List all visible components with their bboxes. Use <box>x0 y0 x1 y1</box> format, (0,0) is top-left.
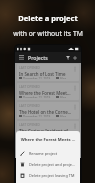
staticText: LAST OPENED <box>19 104 40 108</box>
staticText: In Search of Lost Time <box>19 71 66 77</box>
button[interactable]: Delete project and project TM <box>16 159 80 170</box>
staticText: LAST OPENED <box>19 66 40 70</box>
button[interactable]: Filter <box>64 54 71 61</box>
staticText: The Curious Incident of the Dog in the N… <box>19 128 72 134</box>
button[interactable]: LAST OPENED <box>17 121 79 138</box>
button[interactable]: Add project <box>71 54 78 61</box>
button[interactable]: More options <box>72 66 77 79</box>
button[interactable]: More options <box>72 104 77 117</box>
staticText: Projects <box>28 54 48 61</box>
staticText: Delete project leaving TM <box>29 173 75 178</box>
staticText: Where the Forest Meets the Stars <box>19 90 72 96</box>
staticText: LAST OPENED <box>19 85 40 89</box>
button[interactable]: More options <box>72 123 77 136</box>
staticText: Delete a project <box>18 13 78 23</box>
staticText: Delete project and project TM <box>29 162 76 167</box>
staticText: LAST OPENED <box>19 123 40 127</box>
staticText: December 12, 2019 <box>23 115 51 117</box>
staticText: December 12, 2019 <box>23 153 51 155</box>
staticText: Rename project <box>29 151 58 156</box>
button[interactable]: Delete project leaving TM <box>16 170 80 181</box>
button[interactable]: LAST OPENED <box>17 83 79 100</box>
staticText: December 12, 2019 <box>23 96 51 98</box>
button[interactable]: LAST OPENED <box>17 102 79 119</box>
staticText: A Gentleman in Moscow <box>19 147 70 153</box>
staticText: Files <box>60 77 67 79</box>
button[interactable]: LAST OPENED <box>17 64 79 81</box>
staticText: December 12, 2019 <box>23 77 51 79</box>
staticText: Where the Forest Meets the Stars <box>20 137 76 143</box>
button[interactable]: Rename project <box>16 148 80 159</box>
staticText: with or without its TM <box>13 29 83 38</box>
button[interactable]: More options <box>72 85 77 98</box>
staticText: Files <box>60 115 67 117</box>
button[interactable]: Open navigation menu <box>18 54 25 61</box>
staticText: Files <box>60 96 67 98</box>
staticText: The Hotel on the Corner of Bitter and Sw… <box>19 109 72 115</box>
button[interactable]: LAST OPENED <box>17 140 79 157</box>
